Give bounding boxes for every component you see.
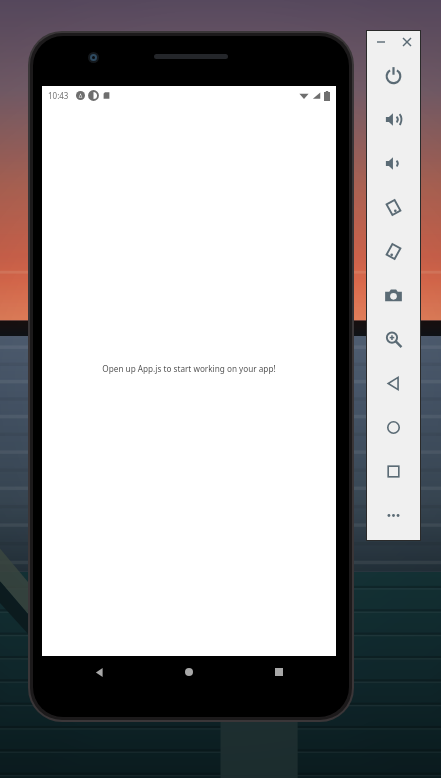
button[interactable]: Overview: [367, 449, 420, 493]
button[interactable]: Rotate left: [367, 185, 420, 229]
button[interactable]: Volume down: [367, 141, 420, 185]
button[interactable]: Minimize: [372, 33, 390, 51]
button[interactable]: Back: [86, 659, 112, 685]
button[interactable]: Take screenshot: [367, 273, 420, 317]
button[interactable]: Close: [398, 33, 416, 51]
staticText: 10:43: [48, 90, 69, 101]
button[interactable]: More: [367, 493, 420, 537]
button[interactable]: Volume up: [367, 97, 420, 141]
button[interactable]: Power: [367, 53, 420, 97]
button[interactable]: Home: [176, 659, 202, 685]
button[interactable]: Back: [367, 361, 420, 405]
button[interactable]: Home: [367, 405, 420, 449]
button[interactable]: Rotate right: [367, 229, 420, 273]
button[interactable]: Recent apps: [266, 659, 292, 685]
button[interactable]: Zoom: [367, 317, 420, 361]
staticText: Open up App.js to start working on your …: [102, 363, 276, 374]
